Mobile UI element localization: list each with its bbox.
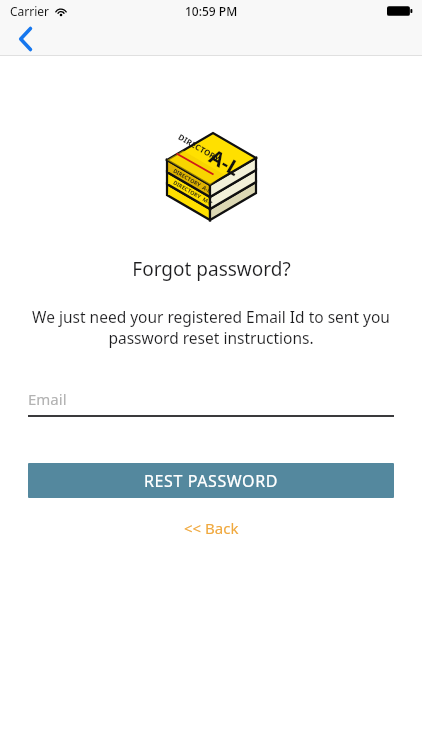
button[interactable]: REST PASSWORD: [28, 463, 394, 498]
staticText: DIRECTORY: [176, 131, 223, 164]
button[interactable]: Back: [4, 22, 48, 56]
staticText: DIRECTORY A-L: [172, 167, 213, 194]
staticText: A-L: [204, 143, 246, 182]
staticText: Email: [28, 389, 67, 409]
staticText: REST PASSWORD: [144, 470, 279, 492]
button[interactable]: Email: [28, 383, 394, 417]
staticText: We just need your registered Email Id to…: [24, 306, 398, 349]
staticText: << Back: [184, 518, 239, 538]
button[interactable]: << Back: [184, 518, 239, 538]
staticText: 10:59 PM: [185, 3, 238, 19]
staticText: Carrier: [10, 3, 50, 19]
staticText: DIRECTORY M-Z: [172, 178, 214, 207]
staticText: Forgot password?: [132, 256, 291, 282]
